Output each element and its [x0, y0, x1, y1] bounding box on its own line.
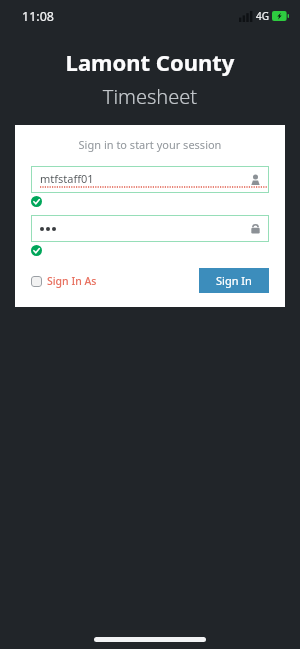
staticText: Sign In As — [47, 274, 97, 288]
staticText: Sign In — [216, 273, 252, 288]
staticText: 11:08 — [22, 8, 54, 25]
staticText: 4G — [256, 9, 269, 23]
other: Username — [250, 174, 261, 185]
other: Password — [250, 223, 261, 234]
staticText: mtfstaff01 — [40, 171, 94, 186]
staticText: Lamont County — [0, 47, 300, 77]
button[interactable]: Password — [31, 215, 269, 242]
button[interactable]: mtfstaff01 — [31, 166, 269, 193]
staticText: Sign in to start your session — [31, 137, 269, 152]
button[interactable]: Sign In — [199, 268, 269, 293]
button[interactable]: Sign In As — [31, 270, 97, 292]
staticText: Timesheet — [0, 83, 300, 110]
